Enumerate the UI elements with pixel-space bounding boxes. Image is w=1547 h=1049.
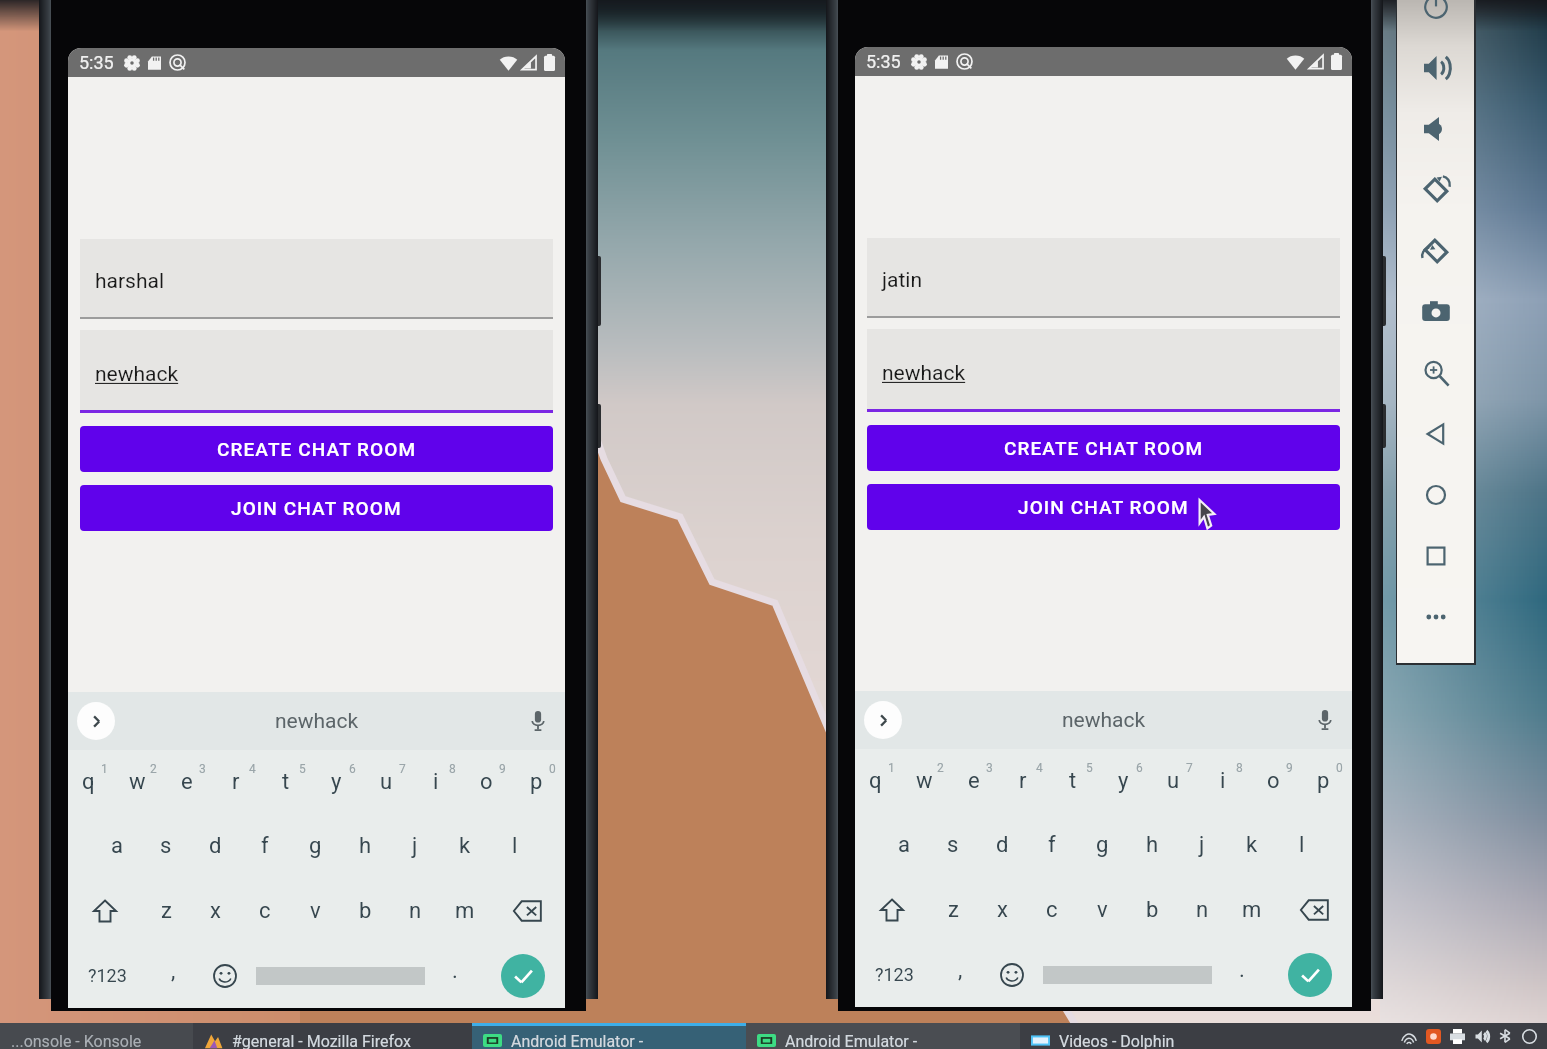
- button[interactable]: t: [1052, 749, 1102, 813]
- button[interactable]: c: [1027, 877, 1077, 942]
- button[interactable]: h: [1127, 813, 1177, 877]
- button[interactable]: ,: [934, 942, 986, 1007]
- button[interactable]: g: [1077, 813, 1127, 877]
- button[interactable]: n: [390, 878, 440, 943]
- button[interactable]: .: [429, 943, 481, 1008]
- button[interactable]: ?123: [855, 942, 934, 1007]
- button[interactable]: g: [290, 814, 340, 878]
- button[interactable]: b: [340, 878, 390, 943]
- button[interactable]: Overview: [1397, 525, 1474, 586]
- button[interactable]: Android Emulator -: [472, 1023, 746, 1049]
- button[interactable]: Clipboard: [1517, 1024, 1541, 1048]
- button[interactable]: m: [440, 878, 490, 943]
- button[interactable]: y: [315, 750, 365, 814]
- button[interactable]: x: [978, 877, 1027, 942]
- button[interactable]: Enter: [1288, 953, 1332, 997]
- button[interactable]: ?123: [68, 943, 147, 1008]
- button[interactable]: ,: [147, 943, 199, 1008]
- button[interactable]: harshal: [80, 239, 553, 319]
- button[interactable]: Zoom: [1397, 342, 1474, 403]
- button[interactable]: i: [415, 750, 465, 814]
- button[interactable]: f: [1027, 813, 1077, 877]
- button[interactable]: Home: [1397, 464, 1474, 525]
- button[interactable]: h: [340, 814, 390, 878]
- button[interactable]: z: [929, 877, 978, 942]
- button[interactable]: Power: [1397, 0, 1474, 37]
- button[interactable]: p: [515, 750, 565, 814]
- button[interactable]: a: [92, 814, 141, 878]
- button[interactable]: d: [977, 813, 1027, 877]
- button[interactable]: Rotate left: [1397, 159, 1474, 220]
- button[interactable]: CREATE CHAT ROOM: [867, 425, 1340, 471]
- button[interactable]: Videos - Dolphin: [1020, 1023, 1294, 1049]
- button[interactable]: ...onsole - Konsole: [0, 1023, 193, 1049]
- button[interactable]: Rotate right: [1397, 220, 1474, 281]
- button[interactable]: newhack: [867, 329, 1340, 412]
- button[interactable]: j: [390, 814, 440, 878]
- button[interactable]: CREATE CHAT ROOM: [80, 426, 553, 472]
- button[interactable]: p: [1302, 749, 1352, 813]
- button[interactable]: c: [240, 878, 290, 943]
- button[interactable]: y: [1102, 749, 1152, 813]
- button[interactable]: m: [1227, 877, 1277, 942]
- button[interactable]: v: [290, 878, 340, 943]
- button[interactable]: jatin: [867, 238, 1340, 318]
- button[interactable]: k: [440, 814, 490, 878]
- button[interactable]: Volume up: [1397, 37, 1474, 98]
- button[interactable]: n: [1177, 877, 1227, 942]
- button[interactable]: .: [1216, 942, 1268, 1007]
- button[interactable]: JOIN CHAT ROOM: [80, 485, 553, 531]
- button[interactable]: #general - Mozilla Firefox: [193, 1023, 472, 1049]
- button[interactable]: Emoji: [986, 942, 1038, 1007]
- button[interactable]: Take screenshot: [1397, 281, 1474, 342]
- button[interactable]: newhack: [80, 330, 553, 413]
- button[interactable]: o: [1252, 749, 1302, 813]
- button[interactable]: b: [1127, 877, 1177, 942]
- button[interactable]: s: [141, 814, 190, 878]
- button[interactable]: Printer: [1445, 1024, 1469, 1048]
- button[interactable]: r: [1002, 749, 1052, 813]
- button[interactable]: j: [1177, 813, 1227, 877]
- button[interactable]: q: [855, 749, 904, 813]
- button[interactable]: f: [240, 814, 290, 878]
- button[interactable]: e: [953, 749, 1002, 813]
- button[interactable]: Shift: [855, 877, 929, 942]
- button[interactable]: u: [365, 750, 415, 814]
- button[interactable]: r: [215, 750, 265, 814]
- button[interactable]: d: [190, 814, 240, 878]
- button[interactable]: Enter: [501, 954, 545, 998]
- button[interactable]: q: [68, 750, 117, 814]
- button[interactable]: s: [928, 813, 977, 877]
- button[interactable]: Backspace: [1277, 877, 1352, 942]
- button[interactable]: t: [265, 750, 315, 814]
- button[interactable]: Network: [1397, 1024, 1421, 1048]
- button[interactable]: Backspace: [490, 878, 565, 943]
- button[interactable]: w: [904, 749, 953, 813]
- button[interactable]: More: [1397, 586, 1474, 647]
- button[interactable]: JOIN CHAT ROOM: [867, 484, 1340, 530]
- button[interactable]: e: [166, 750, 215, 814]
- button[interactable]: k: [1227, 813, 1277, 877]
- button[interactable]: w: [117, 750, 166, 814]
- button[interactable]: l: [490, 814, 540, 878]
- button[interactable]: Updates: [1421, 1024, 1445, 1048]
- button[interactable]: a: [879, 813, 928, 877]
- button[interactable]: Bluetooth: [1493, 1024, 1517, 1048]
- button[interactable]: Volume down: [1397, 98, 1474, 159]
- button[interactable]: v: [1077, 877, 1127, 942]
- button[interactable]: l: [1277, 813, 1327, 877]
- button[interactable]: i: [1202, 749, 1252, 813]
- button[interactable]: More suggestions: [77, 702, 115, 740]
- button[interactable]: x: [191, 878, 240, 943]
- button[interactable]: Voice input: [1310, 705, 1340, 735]
- button[interactable]: Android Emulator -: [746, 1023, 1020, 1049]
- button[interactable]: [1038, 942, 1216, 1007]
- button[interactable]: Back: [1397, 403, 1474, 464]
- button[interactable]: [251, 943, 429, 1008]
- button[interactable]: Shift: [68, 878, 142, 943]
- button[interactable]: Volume: [1469, 1024, 1493, 1048]
- button[interactable]: Voice input: [523, 706, 553, 736]
- button[interactable]: o: [465, 750, 515, 814]
- button[interactable]: Emoji: [199, 943, 251, 1008]
- button[interactable]: More suggestions: [864, 701, 902, 739]
